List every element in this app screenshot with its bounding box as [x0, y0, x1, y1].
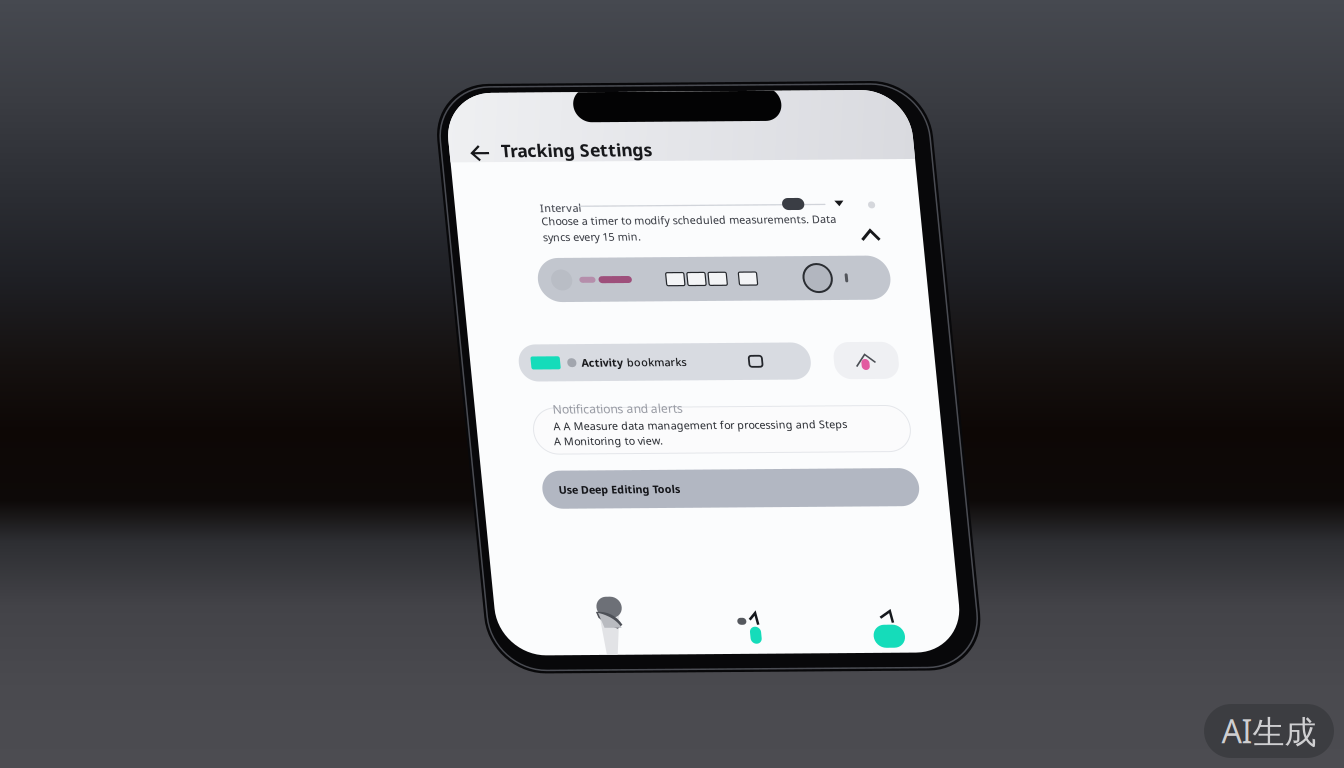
- staticText: AI生成: [1221, 710, 1316, 752]
- button[interactable]: Trends: [245, 528, 289, 570]
- button[interactable]: Activity: [377, 527, 421, 569]
- button[interactable]: Profile: [109, 511, 149, 573]
